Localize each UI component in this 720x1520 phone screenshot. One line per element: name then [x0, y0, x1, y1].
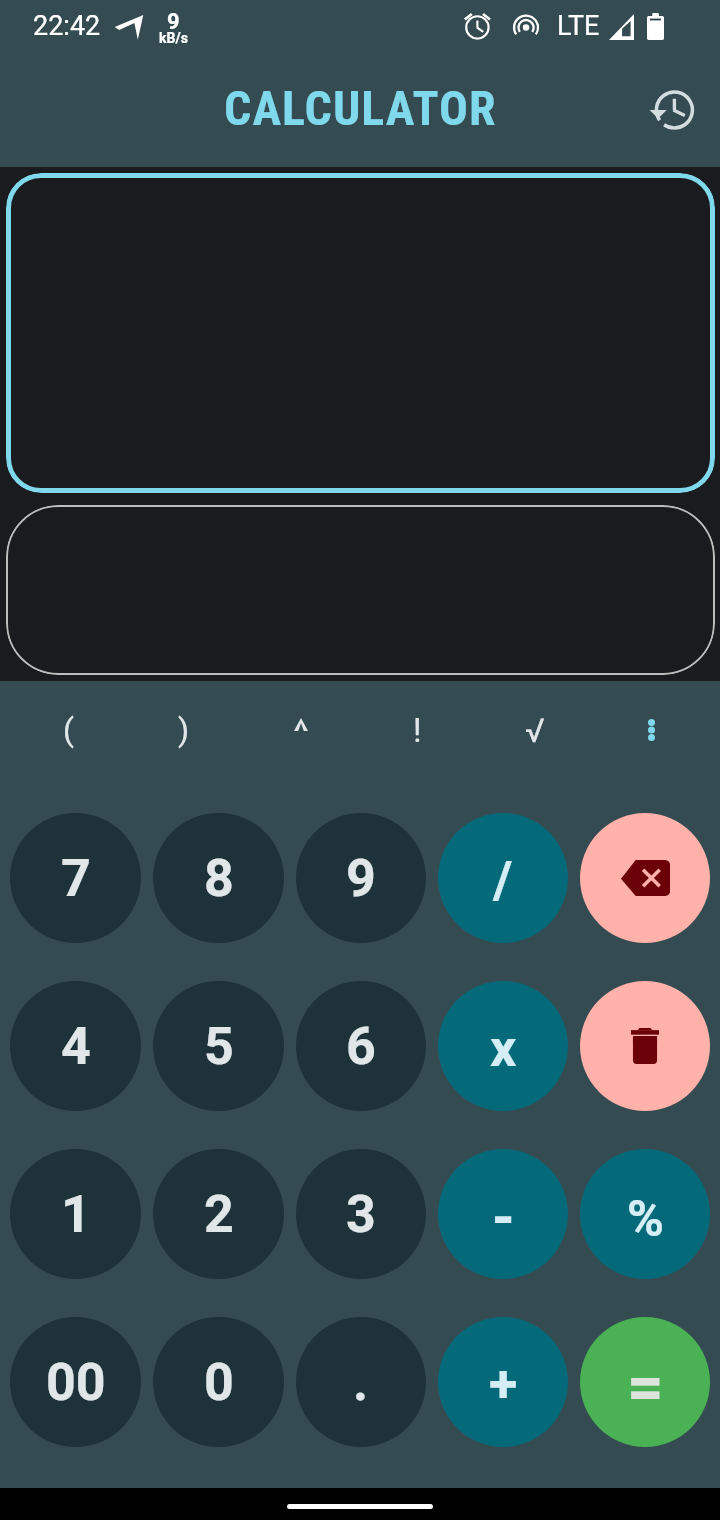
button[interactable]: 1	[10, 1149, 141, 1279]
staticText: 2	[204, 1184, 234, 1245]
staticText: =	[627, 1350, 664, 1425]
staticText: 0	[204, 1352, 234, 1413]
button[interactable]: More options	[593, 694, 710, 766]
button[interactable]	[6, 173, 715, 493]
staticText: 22:42	[33, 10, 101, 42]
staticText: +	[489, 1354, 518, 1415]
button[interactable]	[242, 694, 359, 766]
button[interactable]: %	[580, 1149, 710, 1279]
button[interactable]: 4	[10, 981, 141, 1111]
staticText: /	[493, 850, 513, 911]
button[interactable]	[6, 505, 715, 675]
button[interactable]: 9	[296, 813, 426, 943]
staticText: √	[525, 711, 545, 750]
button[interactable]: 00	[10, 1317, 141, 1447]
button[interactable]: Backspace	[580, 813, 710, 943]
button[interactable]: (	[10, 694, 126, 766]
staticText: (	[63, 711, 74, 749]
button[interactable]: !	[359, 694, 476, 766]
staticText: x	[490, 1018, 517, 1079]
button[interactable]: =	[580, 1317, 710, 1447]
button[interactable]: 7	[10, 813, 141, 943]
button[interactable]: )	[126, 694, 242, 766]
staticText: 9	[346, 848, 376, 909]
button[interactable]: 3	[296, 1149, 426, 1279]
button[interactable]: +	[438, 1317, 568, 1447]
staticText: CALCULATOR	[224, 80, 497, 136]
button[interactable]: Clear all	[580, 981, 710, 1111]
button[interactable]: √	[476, 694, 593, 766]
staticText: .	[353, 1352, 369, 1413]
staticText: kB/s	[159, 30, 188, 46]
button[interactable]: History	[644, 82, 701, 139]
button[interactable]: 6	[296, 981, 426, 1111]
button[interactable]: 2	[153, 1149, 284, 1279]
staticText: 4	[61, 1016, 91, 1077]
button[interactable]: 5	[153, 981, 284, 1111]
staticText: !	[413, 711, 422, 750]
staticText: 1	[61, 1184, 91, 1245]
button[interactable]: .	[296, 1317, 426, 1447]
staticText: 7	[61, 848, 91, 909]
button[interactable]: 0	[153, 1317, 284, 1447]
staticText: )	[178, 711, 190, 749]
staticText: 8	[204, 848, 234, 909]
staticText: 6	[346, 1016, 376, 1077]
staticText: %	[627, 1190, 664, 1249]
staticText: 00	[46, 1352, 106, 1413]
staticText: 3	[346, 1184, 376, 1245]
button[interactable]: /	[438, 813, 568, 943]
staticText: 9	[167, 9, 180, 35]
staticText: 5	[204, 1016, 234, 1077]
button[interactable]: -	[438, 1149, 568, 1279]
button[interactable]: x	[438, 981, 568, 1111]
staticText: -	[492, 1183, 515, 1251]
staticText: LTE	[557, 10, 600, 42]
button[interactable]: 8	[153, 813, 284, 943]
